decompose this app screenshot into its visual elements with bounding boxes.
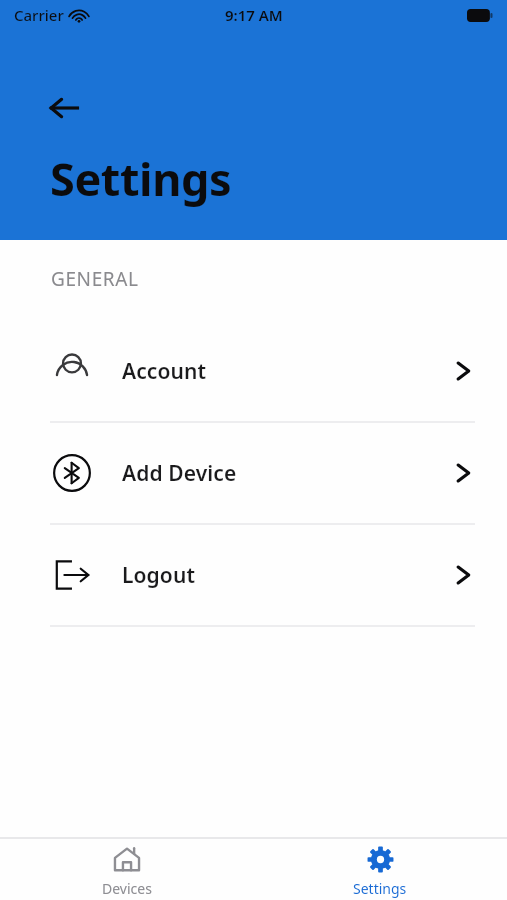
- button[interactable]: Settings: [253, 839, 507, 900]
- button[interactable]: Logout: [0, 525, 507, 625]
- staticText: Settings: [50, 148, 232, 209]
- staticText: Logout: [122, 561, 196, 590]
- button[interactable]: Devices: [0, 839, 253, 900]
- staticText: Settings: [353, 879, 407, 898]
- button[interactable]: Back: [38, 82, 90, 134]
- staticText: Carrier: [14, 5, 64, 25]
- staticText: GENERAL: [51, 266, 139, 292]
- staticText: Account: [122, 357, 207, 386]
- staticText: Add Device: [122, 459, 237, 488]
- staticText: Devices: [102, 879, 152, 898]
- button[interactable]: Account: [0, 321, 507, 421]
- staticText: 9:17 AM: [225, 5, 283, 25]
- button[interactable]: Add Device: [0, 423, 507, 523]
